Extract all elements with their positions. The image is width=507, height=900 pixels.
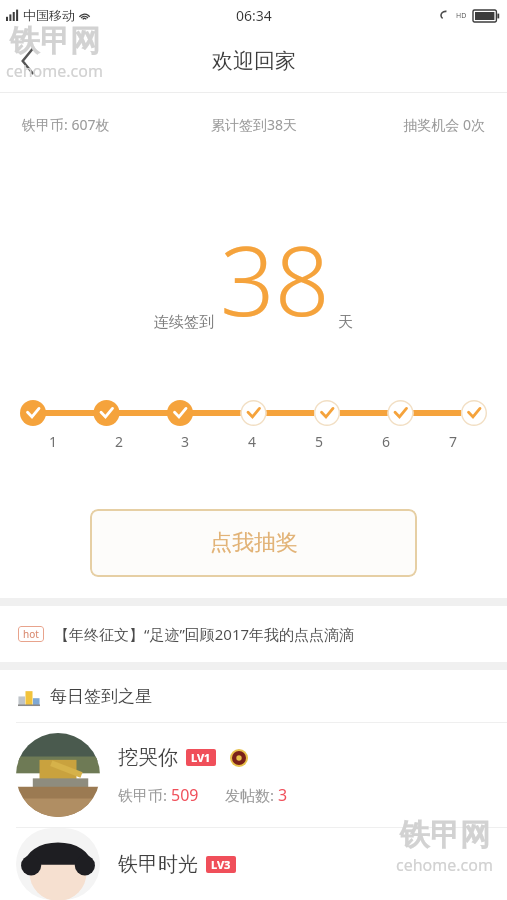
staticText: 挖哭你 (118, 745, 178, 770)
staticText: LV1 (191, 750, 211, 765)
staticText: 累计签到38天 (177, 115, 331, 134)
staticText: 4 (248, 432, 257, 451)
staticText: 3 (181, 432, 190, 451)
staticText: 欢迎回家 (212, 48, 296, 74)
button[interactable]: 铁甲时光 (0, 828, 507, 900)
button[interactable]: Back (0, 33, 56, 89)
staticText: hot (23, 627, 39, 641)
staticText: HD (456, 11, 467, 21)
staticText: 2 (115, 432, 124, 451)
staticText: 38 (220, 213, 330, 344)
staticText: 抽奖机会 0次 (331, 115, 485, 134)
button[interactable]: 点我抽奖 (90, 509, 417, 577)
staticText: 06:34 (236, 6, 272, 25)
staticText: 5 (315, 432, 324, 451)
staticText: 发帖数: (225, 785, 278, 805)
staticText: 【年终征文】“足迹”回顾2017年我的点点滴滴 (54, 624, 355, 644)
staticText: cehome.com (396, 854, 493, 876)
staticText: 铁甲网 (10, 22, 100, 60)
staticText: 3 (278, 784, 288, 806)
button[interactable]: hot (0, 606, 507, 662)
staticText: 1 (49, 432, 58, 451)
staticText: 509 (171, 784, 199, 806)
staticText: 每日签到之星 (50, 686, 152, 707)
staticText: 6 (382, 432, 391, 451)
staticText: 铁甲币: 607枚 (22, 115, 177, 134)
staticText: 连续签到 (154, 313, 214, 332)
staticText: 点我抽奖 (210, 529, 298, 557)
staticText: 铁甲时光 (118, 852, 198, 877)
staticText: 铁甲币: (118, 785, 171, 805)
button[interactable]: 挖哭你 (0, 723, 507, 827)
staticText: LV3 (211, 857, 231, 872)
staticText: 7 (449, 432, 458, 451)
staticText: 铁甲网 (400, 816, 490, 854)
staticText: 中国移动 (23, 7, 75, 23)
staticText: cehome.com (6, 60, 103, 82)
staticText: 天 (338, 313, 353, 332)
